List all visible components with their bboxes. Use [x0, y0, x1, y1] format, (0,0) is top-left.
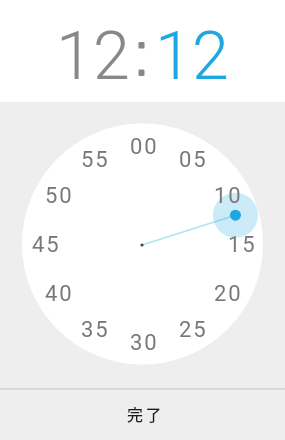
staticText: 50 [45, 183, 74, 209]
staticText: 12 [56, 17, 130, 95]
button[interactable]: 12 [155, 17, 229, 95]
staticText: 完了 [127, 402, 165, 425]
staticText: 20 [214, 281, 243, 307]
staticText: 12 [155, 17, 229, 95]
staticText: 55 [81, 147, 110, 173]
staticText: 00 [130, 134, 159, 160]
staticText: 10 [214, 183, 243, 209]
button[interactable]: 12 [56, 17, 130, 95]
staticText: 45 [32, 232, 61, 258]
staticText: 35 [81, 317, 110, 343]
button[interactable]: 完了 [0, 390, 285, 440]
staticText: 05 [179, 147, 208, 173]
staticText: 40 [45, 281, 74, 307]
staticText: 30 [130, 330, 159, 356]
staticText: 15 [228, 232, 257, 258]
button[interactable] [22, 124, 263, 365]
staticText: 25 [179, 317, 208, 343]
